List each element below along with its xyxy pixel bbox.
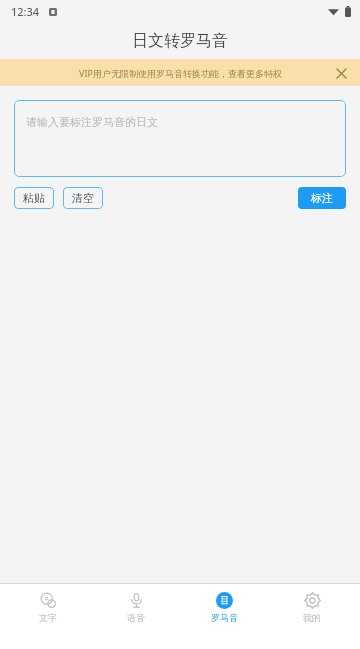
staticText: 请输入要标注罗马音的日文 [26,115,158,129]
staticText: 清空 [72,191,94,205]
staticText: 日文转罗马音 [132,31,228,51]
staticText: 我的 [303,612,321,623]
button[interactable]: 请输入要标注罗马音的日文 [14,100,346,177]
button[interactable]: 语音 [96,584,176,631]
button[interactable]: 粘贴 [14,187,54,209]
button[interactable]: 罗马音 [184,584,264,631]
button[interactable]: 文字 [8,584,88,631]
button[interactable]: 关闭 [331,63,351,83]
staticText: 罗马音 [211,612,238,623]
button[interactable]: 标注 [298,187,346,209]
staticText: 语音 [127,612,145,623]
button[interactable]: VIP用户无限制使用罗马音转换功能，查看更多特权 [0,59,360,86]
button[interactable]: 清空 [63,187,103,209]
button[interactable]: 我的 [272,584,352,631]
staticText: VIP用户无限制使用罗马音转换功能，查看更多特权 [79,67,282,79]
staticText: 标注 [311,191,333,205]
staticText: 粘贴 [23,191,45,205]
staticText: 文字 [39,612,57,623]
staticText: 12:34 [11,4,40,19]
